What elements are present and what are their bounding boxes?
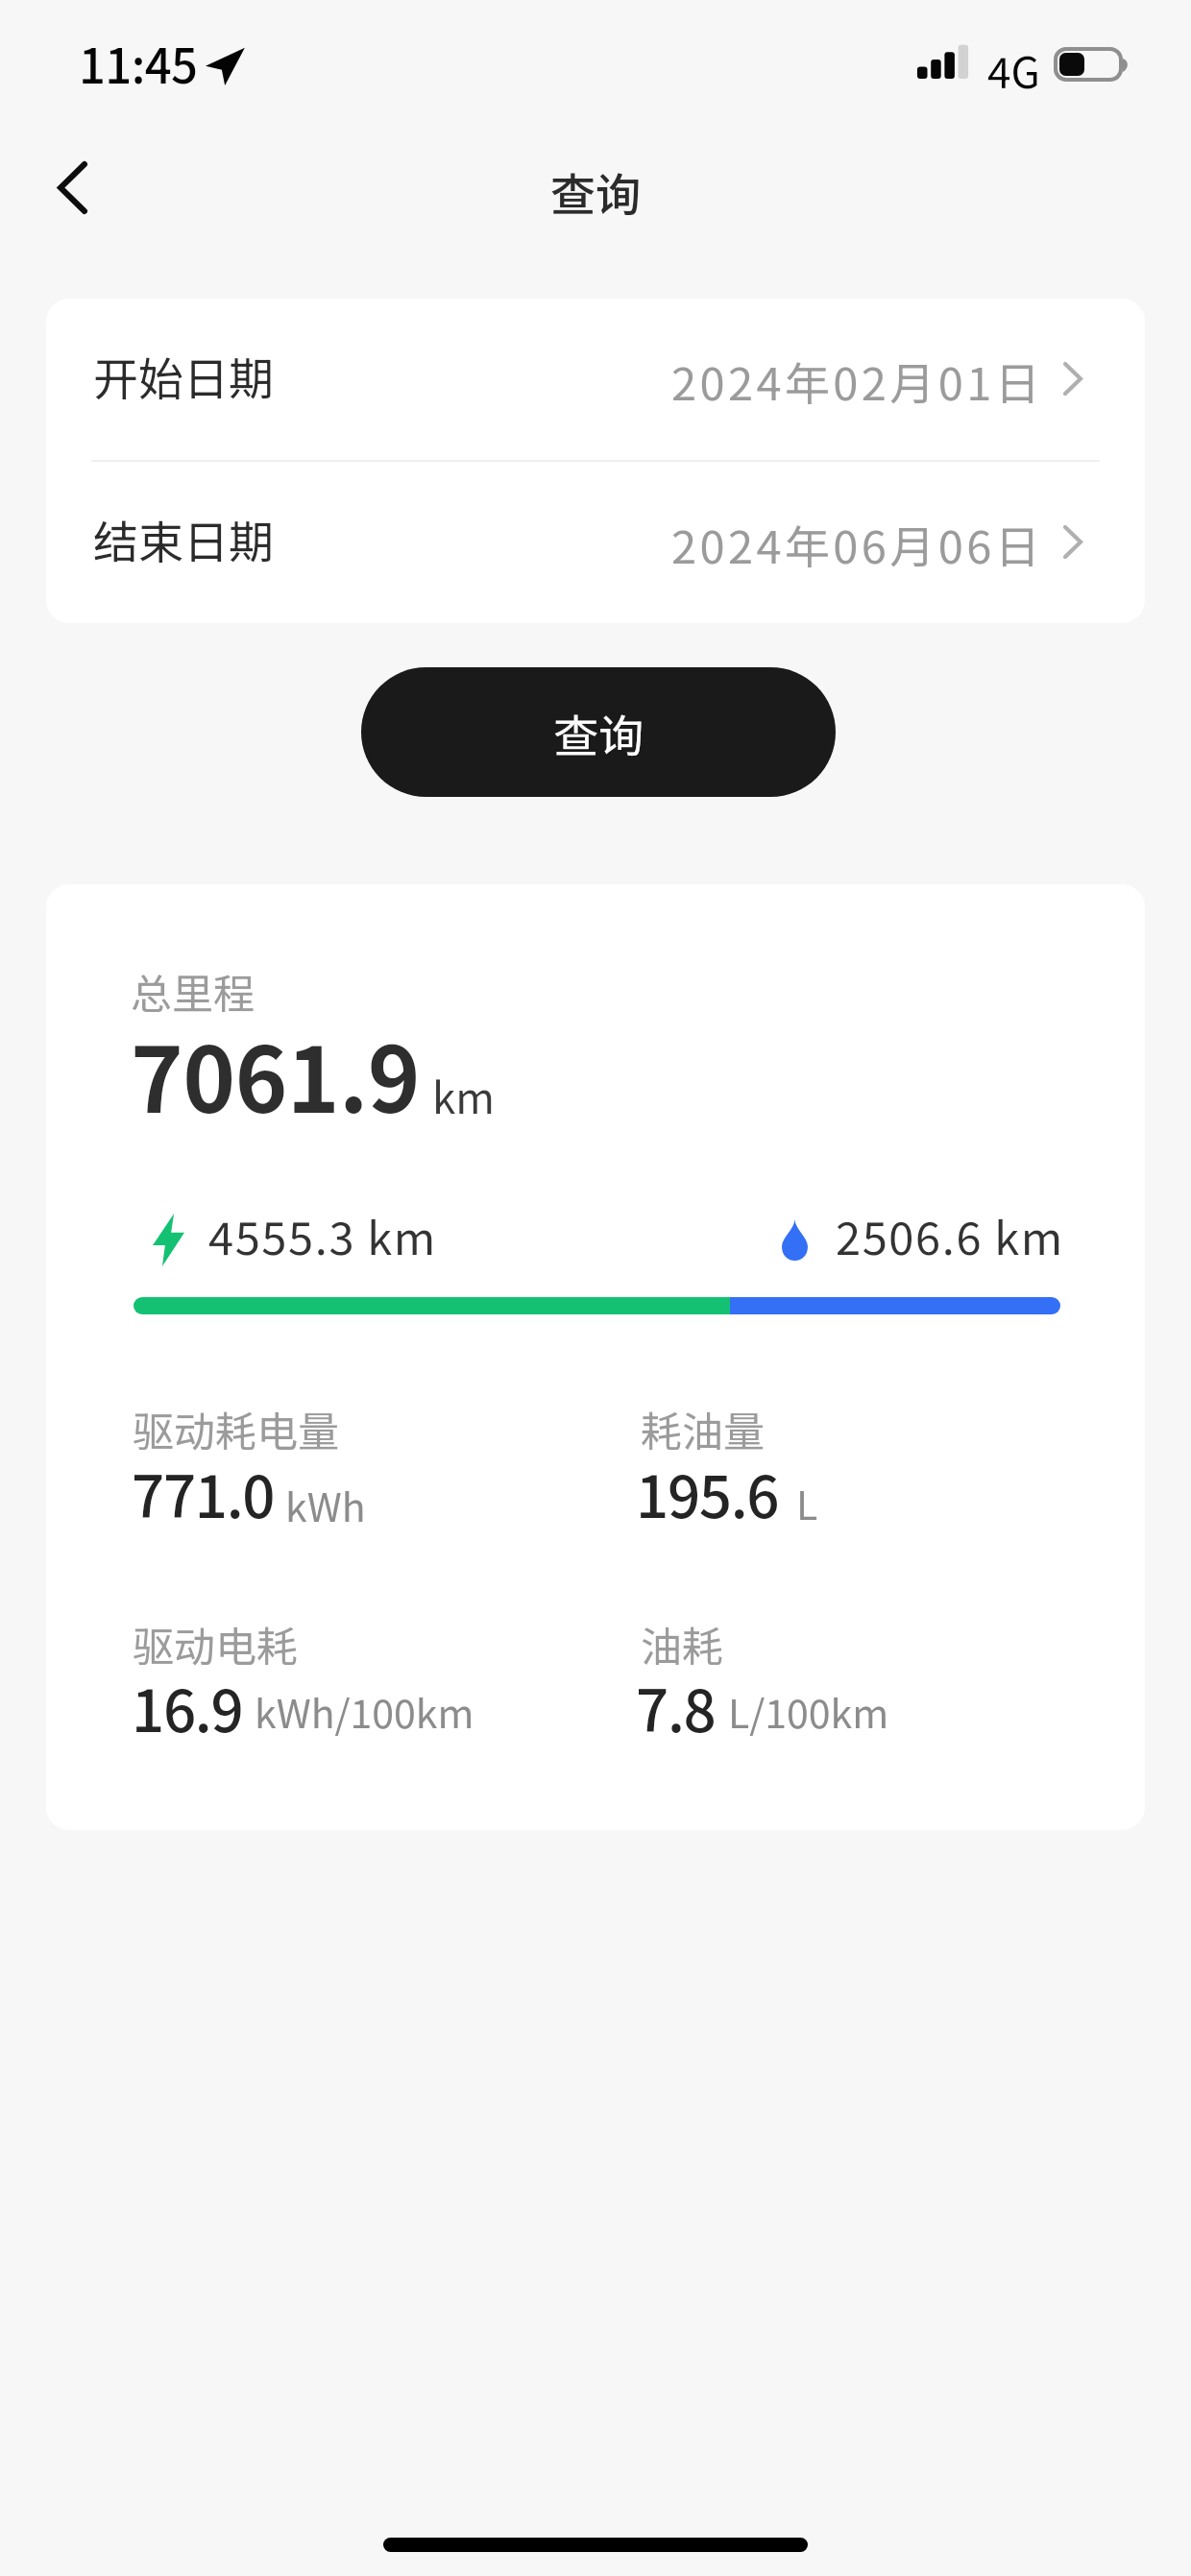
staticText: kWh xyxy=(285,1476,366,1532)
staticText: 结束日期 xyxy=(93,506,274,571)
staticText: 2024年02月01日 xyxy=(671,348,1044,413)
staticText: L xyxy=(796,1474,818,1530)
staticText: 总里程 xyxy=(131,961,255,1021)
button[interactable]: 开始日期 xyxy=(46,299,1145,460)
staticText: km xyxy=(432,1065,496,1126)
staticText: 771.0 xyxy=(132,1451,275,1534)
staticText: 11:45 xyxy=(79,29,198,97)
staticText: 查询 xyxy=(550,158,641,224)
staticText: 4G xyxy=(987,39,1040,101)
staticText: 耗油量 xyxy=(641,1399,765,1458)
staticText: 16.9 xyxy=(132,1665,243,1748)
staticText: 驱动耗电量 xyxy=(133,1399,339,1458)
staticText: 驱动电耗 xyxy=(133,1614,298,1673)
staticText: 195.6 xyxy=(636,1451,779,1534)
staticText: 2506.6 km xyxy=(836,1202,1064,1267)
staticText: 查询 xyxy=(553,700,644,765)
staticText: 7061.9 xyxy=(131,1009,420,1139)
staticText: 2024年06月06日 xyxy=(671,511,1044,576)
button[interactable]: 查询 xyxy=(361,667,836,797)
button[interactable]: 结束日期 xyxy=(46,462,1145,623)
staticText: 油耗 xyxy=(641,1614,723,1673)
staticText: 开始日期 xyxy=(93,343,274,408)
button[interactable]: Back xyxy=(36,153,108,222)
staticText: kWh/100km xyxy=(255,1682,474,1739)
staticText: L/100km xyxy=(728,1682,889,1739)
staticText: 4555.3 km xyxy=(208,1202,437,1267)
staticText: 7.8 xyxy=(636,1665,716,1748)
